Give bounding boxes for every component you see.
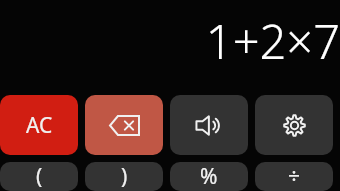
staticText: % (200, 162, 218, 191)
button[interactable]: Backspace (85, 95, 163, 155)
button[interactable]: AC (0, 95, 78, 155)
button[interactable]: ( (0, 162, 78, 191)
staticText: ) (121, 162, 128, 191)
button[interactable]: ) (85, 162, 163, 191)
button[interactable]: Settings (255, 95, 333, 155)
staticText: AC (26, 111, 53, 140)
button[interactable]: Sound (170, 95, 248, 155)
staticText: ÷ (288, 162, 301, 191)
button[interactable]: ÷ (255, 162, 333, 191)
staticText: ( (36, 162, 43, 191)
button[interactable]: % (170, 162, 248, 191)
staticText: 1+2×7 (205, 9, 340, 73)
